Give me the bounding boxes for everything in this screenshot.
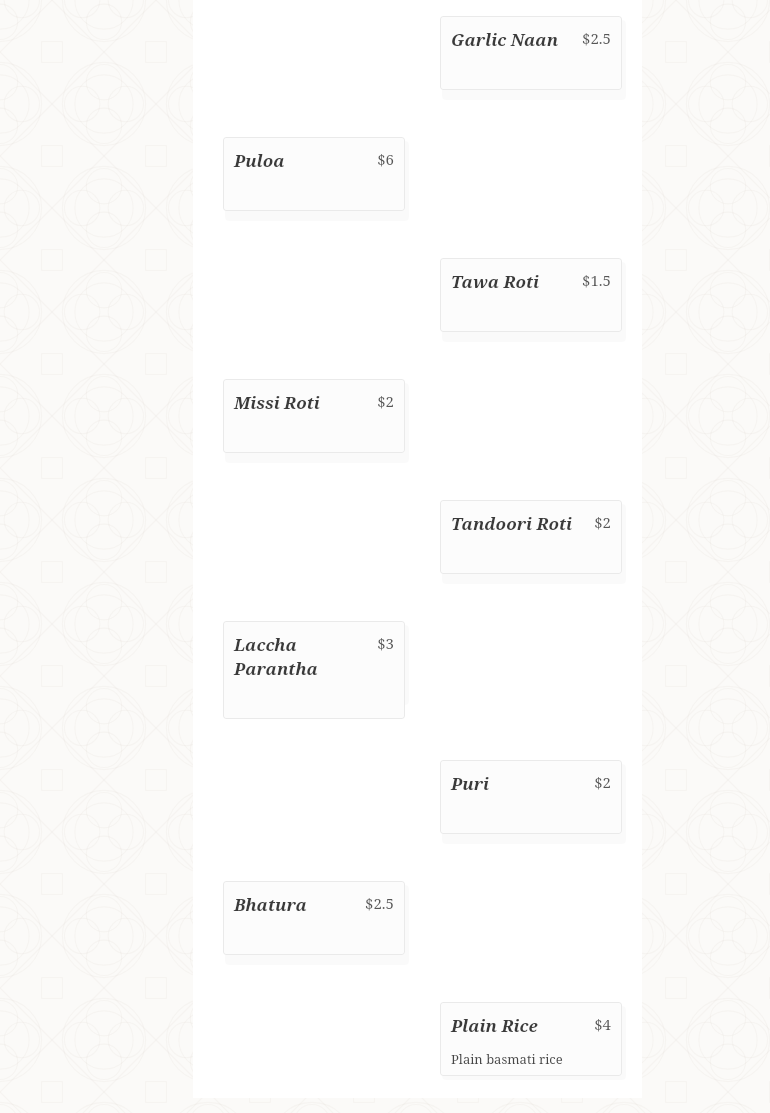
button[interactable]: Puloa [223,137,405,211]
staticText: $2 [594,772,611,792]
staticText: Bhatura [234,893,359,916]
button[interactable]: Missi Roti [223,379,405,453]
staticText: Garlic Naan [451,28,576,51]
button[interactable]: Plain Rice [440,1002,622,1076]
staticText: $1.5 [582,270,611,290]
staticText: $2 [377,391,394,411]
staticText: $2 [594,512,611,532]
staticText: $2.5 [365,893,394,913]
staticText: Laccha Parantha [234,633,371,680]
staticText: $2.5 [582,28,611,48]
staticText: Plain basmati rice [451,1050,563,1064]
staticText: Puloa [234,149,371,172]
staticText: $3 [377,633,394,653]
button[interactable]: Puri [440,760,622,834]
staticText: Puri [451,772,588,795]
button[interactable]: Bhatura [223,881,405,955]
button[interactable]: Laccha Parantha [223,621,405,719]
staticText: $4 [594,1014,611,1034]
staticText: Missi Roti [234,391,371,414]
button[interactable]: Garlic Naan [440,16,622,90]
button[interactable]: Tandoori Roti [440,500,622,574]
staticText: Plain Rice [451,1014,588,1037]
staticText: Tandoori Roti [451,512,588,535]
button[interactable]: Tawa Roti [440,258,622,332]
staticText: $6 [377,149,394,169]
staticText: Tawa Roti [451,270,576,293]
